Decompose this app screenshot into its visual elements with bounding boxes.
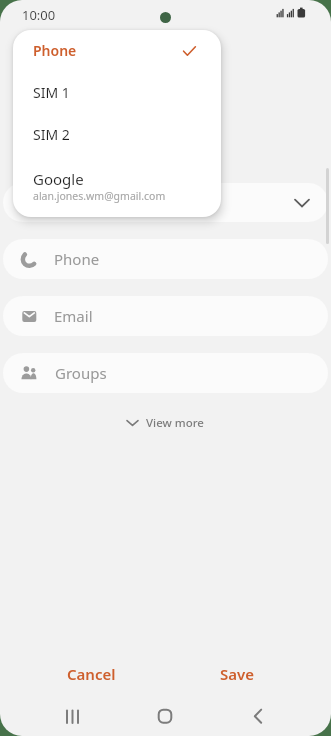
staticText: Groups	[55, 363, 107, 383]
staticText: Cancel	[67, 664, 116, 684]
staticText: alan.jones.wm@gmail.com	[33, 189, 166, 203]
staticText: SIM 2	[33, 125, 70, 144]
staticText: Google	[33, 169, 84, 189]
button[interactable]: Save	[187, 656, 287, 692]
button[interactable]: Phone	[3, 239, 328, 279]
staticText: SIM 1	[33, 83, 70, 102]
button[interactable]	[238, 696, 278, 736]
staticText: Save	[220, 664, 255, 684]
button[interactable]: Phone	[13, 30, 221, 71]
button[interactable]	[145, 696, 185, 736]
button[interactable]	[53, 696, 93, 736]
button[interactable]: Cancel	[41, 656, 141, 692]
button[interactable]: Groups	[3, 353, 328, 393]
button[interactable]: SIM 1	[13, 71, 221, 113]
button[interactable]: Google	[13, 155, 221, 217]
staticText: Phone	[33, 41, 77, 60]
staticText: Phone	[54, 249, 100, 269]
button[interactable]: View more	[0, 410, 331, 436]
button[interactable]: SIM 2	[13, 113, 221, 155]
button[interactable]	[3, 183, 328, 222]
staticText: 10:00	[22, 6, 56, 24]
button[interactable]: Email	[3, 296, 328, 336]
staticText: Email	[54, 306, 93, 326]
staticText: View more	[146, 415, 204, 431]
